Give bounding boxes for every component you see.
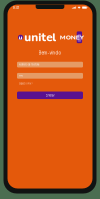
staticText: Entrar	[45, 93, 54, 97]
staticText: 9:41	[13, 5, 20, 10]
button[interactable]: Esqueci o PIN?	[18, 82, 32, 85]
staticText: unitel	[24, 29, 56, 45]
staticText: Número de Telefone	[19, 63, 39, 66]
staticText: u	[19, 33, 23, 42]
button[interactable]: Entrar	[17, 91, 83, 99]
staticText: PIN	[19, 74, 23, 77]
staticText: Esqueci o PIN?	[18, 82, 32, 85]
staticText: MONEY	[60, 33, 84, 42]
staticText: Bem-vindo	[38, 50, 61, 55]
